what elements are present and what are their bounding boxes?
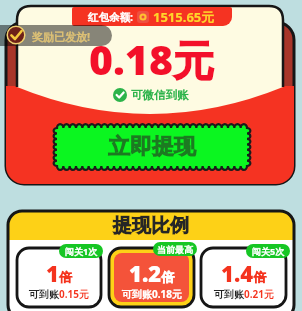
staticText: 当前最高 xyxy=(157,244,193,255)
staticText: 0.18元 xyxy=(89,31,214,87)
staticText: 闯关5次 xyxy=(252,245,285,257)
button[interactable]: 1倍 xyxy=(17,248,101,307)
button[interactable]: 闯关5次 xyxy=(246,244,290,258)
staticText: 1倍 xyxy=(46,258,72,288)
staticText: 1.4倍 xyxy=(221,258,267,288)
button[interactable]: 闯关1次 xyxy=(59,244,103,258)
staticText: 可到账0.21元 xyxy=(214,287,274,301)
button[interactable]: 1.2倍 xyxy=(109,248,194,307)
staticText: 立即提现 xyxy=(108,133,196,161)
staticText: 奖励已发放! xyxy=(32,29,91,44)
staticText: 可微信到账 xyxy=(131,88,189,102)
button[interactable]: 立即提现 xyxy=(54,125,250,169)
staticText: 可到账0.15元 xyxy=(29,287,89,301)
staticText: 红包余额: xyxy=(88,10,133,24)
staticText: 1.2倍 xyxy=(129,258,175,288)
staticText: 可到账0.18元 xyxy=(122,287,182,301)
button[interactable]: 1.4倍 xyxy=(201,248,286,307)
button[interactable]: 红包余额: xyxy=(72,7,232,26)
staticText: 闯关1次 xyxy=(65,245,98,257)
staticText: 提现比例 xyxy=(113,214,189,238)
button[interactable]: 当前最高 xyxy=(153,242,197,256)
staticText: 1515.65元 xyxy=(153,8,215,26)
